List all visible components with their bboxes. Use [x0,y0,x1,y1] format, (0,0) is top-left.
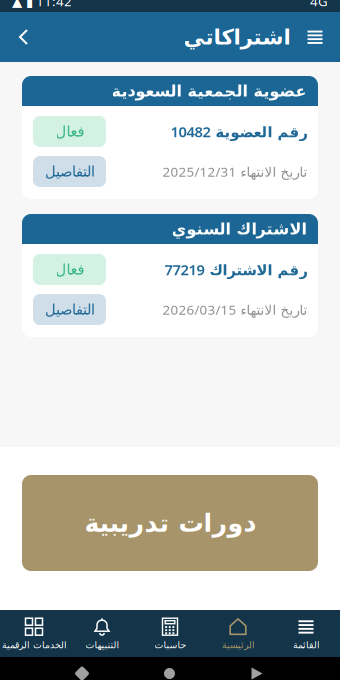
staticText: التنبيهات [85,640,119,650]
button[interactable]: القائمة [272,617,340,650]
staticText: الاشتراك السنوي [171,220,306,238]
staticText: حاسبات [154,640,186,650]
staticText: تاريخ الانتهاء 2025/12/31 [162,163,307,180]
button[interactable]: التفاصيل [33,294,106,325]
button[interactable]: التفاصيل [33,156,106,187]
button[interactable]: دورات تدريبية [22,475,318,571]
staticText: دورات تدريبية [84,509,256,537]
staticText: الرئيسية [221,640,254,650]
button[interactable]: رجوع [10,22,40,52]
staticText: ▲ ▮ 11:42 [12,0,72,10]
button[interactable]: الرئيسية [204,617,272,650]
staticText: فعال [55,261,84,278]
staticText: اشتراكاتي [183,25,290,49]
button[interactable]: التنبيهات [68,617,136,650]
staticText: الخدمات الرقمية [1,640,66,650]
button[interactable]: القائمة [300,22,330,52]
button[interactable]: الخدمات الرقمية [0,617,68,650]
staticText: رقم العضوية 10482 [170,122,307,141]
staticText: التفاصيل [44,301,94,318]
staticText: فعال [55,123,84,140]
staticText: 4G [310,0,328,10]
staticText: تاريخ الانتهاء 2026/03/15 [162,301,307,318]
staticText: عضوية الجمعية السعودية [111,82,306,100]
staticText: القائمة [292,640,319,650]
staticText: التفاصيل [44,163,94,180]
button[interactable]: حاسبات [136,617,204,650]
staticText: رقم الاشتراك 77219 [164,260,307,279]
